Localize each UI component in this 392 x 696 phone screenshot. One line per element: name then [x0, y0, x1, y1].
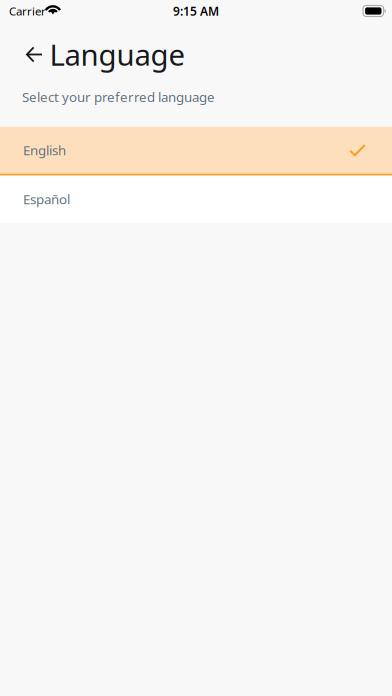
staticText: Select your preferred language — [22, 88, 215, 106]
button[interactable]: English — [0, 127, 392, 176]
staticText: English — [23, 141, 66, 159]
staticText: Language — [49, 35, 185, 74]
button[interactable]: Back — [0, 39, 49, 70]
button[interactable]: Español — [0, 176, 392, 223]
staticText: 9:15 AM — [173, 3, 219, 19]
staticText: Carrier — [9, 3, 46, 19]
staticText: Español — [23, 190, 70, 208]
